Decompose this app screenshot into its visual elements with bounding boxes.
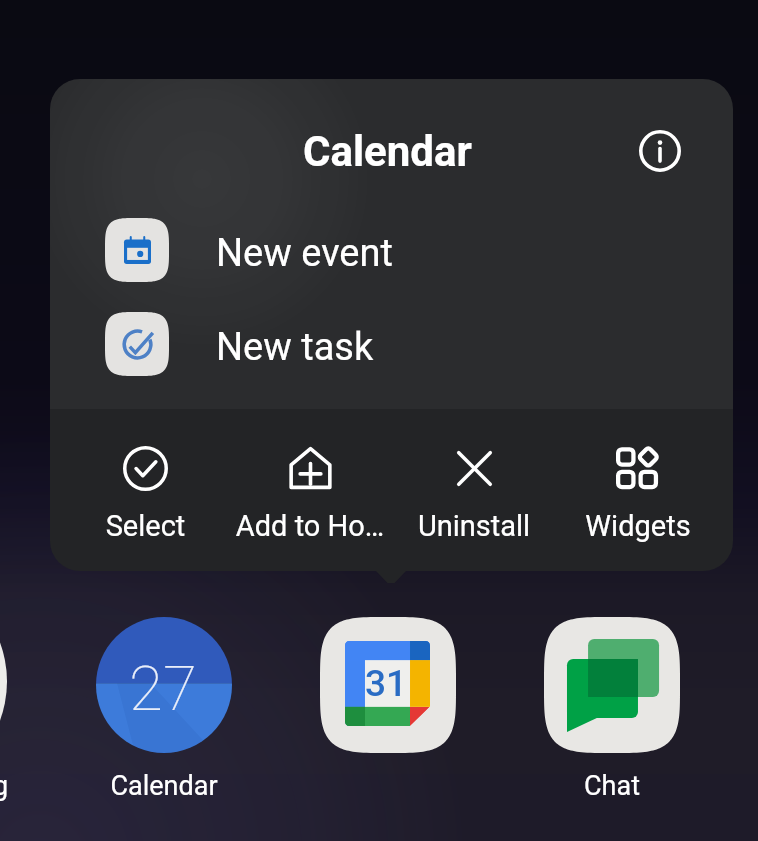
staticText: New event xyxy=(216,231,393,276)
button[interactable]: 31 xyxy=(320,617,456,753)
button[interactable]: Select xyxy=(63,409,228,571)
button[interactable]: App info xyxy=(629,120,691,182)
button[interactable]: Add to Ho… xyxy=(228,409,392,571)
button[interactable]: Chat xyxy=(544,617,680,802)
button[interactable]: Widgets xyxy=(556,409,720,571)
staticText: Select xyxy=(63,509,228,543)
button[interactable]: Uninstall xyxy=(392,409,556,571)
staticText: Calendar xyxy=(303,127,472,176)
staticText: 31 xyxy=(365,662,408,705)
staticText: Uninstall xyxy=(392,509,556,543)
staticText: New task xyxy=(216,325,374,370)
button[interactable]: 27 xyxy=(96,617,232,802)
staticText: Add to Ho… xyxy=(228,509,392,543)
staticText: Chat xyxy=(544,770,680,802)
button[interactable]: App xyxy=(0,570,7,793)
staticText: Calendar xyxy=(96,770,232,802)
button[interactable]: New task xyxy=(50,297,733,391)
staticText: Widgets xyxy=(556,509,720,543)
staticText: g xyxy=(0,770,9,802)
staticText: 27 xyxy=(129,652,197,725)
button[interactable]: New event xyxy=(50,203,733,297)
